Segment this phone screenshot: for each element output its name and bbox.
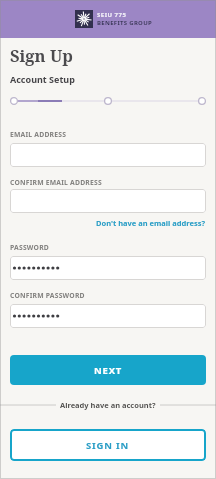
button[interactable] [10,304,206,328]
button[interactable] [10,143,206,167]
staticText: SEIU 775 [97,11,127,19]
button[interactable]: NEXT [10,355,206,385]
button[interactable]: Don't have an email address? [10,218,206,228]
staticText: SIGN IN [86,439,130,452]
button[interactable] [10,256,206,280]
staticText: NEXT [94,364,123,377]
staticText: Account Setup [10,73,75,85]
staticText: CONFIRM EMAIL ADDRESS [10,178,102,187]
staticText: Already have an account? [60,400,156,410]
staticText: CONFIRM PASSWORD [10,291,85,300]
staticText: Don't have an email address? [96,218,206,228]
staticText: Sign Up [10,44,73,66]
staticText: EMAIL ADDRESS [10,130,67,139]
staticText: PASSWORD [10,243,49,252]
button[interactable]: SIGN IN [10,429,206,461]
staticText: BENEFITS GROUP [97,19,153,27]
button[interactable] [10,189,206,213]
